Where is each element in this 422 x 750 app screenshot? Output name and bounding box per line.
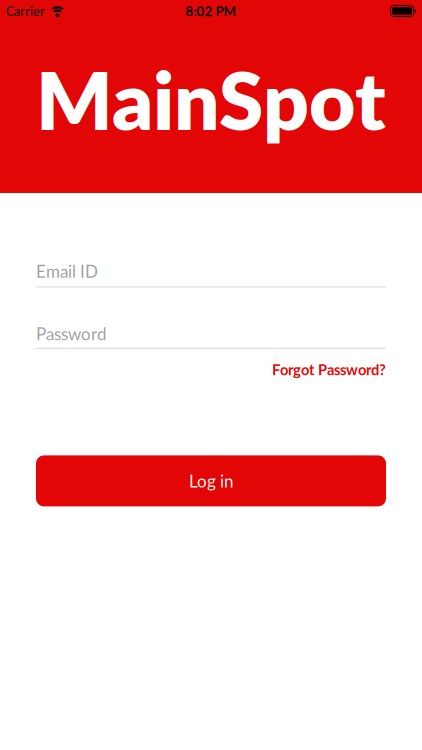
staticText: Carrier xyxy=(6,3,45,19)
staticText: Log in xyxy=(189,471,233,491)
button[interactable]: Email ID xyxy=(36,261,386,287)
button[interactable]: Password xyxy=(36,323,386,349)
button[interactable]: Forgot Password? xyxy=(272,361,386,378)
staticText: 8:02 PM xyxy=(185,3,236,19)
staticText: MainSpot xyxy=(36,51,386,147)
staticText: Forgot Password? xyxy=(272,361,386,378)
staticText: Email ID xyxy=(36,261,98,281)
staticText: Password xyxy=(36,323,107,344)
button[interactable]: Log in xyxy=(36,455,386,506)
